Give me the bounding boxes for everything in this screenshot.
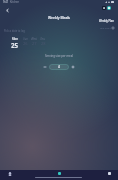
button[interactable]: Wed <box>31 37 37 46</box>
staticText: Weekly Plan <box>99 19 114 23</box>
button[interactable]: 4 <box>49 64 69 70</box>
button[interactable]: Bookmark <box>102 6 106 10</box>
button[interactable]: Profile <box>107 6 111 10</box>
staticText: Weekly Meals <box>48 15 70 19</box>
button[interactable]: Recents <box>106 170 113 177</box>
staticText: 4 <box>58 65 60 69</box>
button[interactable]: Back <box>3 6 12 15</box>
staticText: Kitchen <box>10 0 20 4</box>
button[interactable]: Increase <box>70 64 76 70</box>
button[interactable]: Decrease <box>42 64 48 70</box>
staticText: Serving size per meal <box>45 54 73 58</box>
staticText: 26 <box>23 41 28 46</box>
staticText: Mon <box>12 37 19 41</box>
staticText: Wed <box>31 37 37 41</box>
staticText: Pick a date to log <box>4 29 25 33</box>
button[interactable]: Home <box>6 170 13 177</box>
button[interactable]: Tue <box>23 37 28 46</box>
staticText: 9:41 <box>3 0 9 4</box>
staticText: 28 <box>41 41 46 46</box>
staticText: Tue <box>23 37 28 41</box>
staticText: 25 <box>11 41 19 49</box>
button[interactable]: Thu <box>40 37 46 46</box>
button[interactable]: Planner <box>56 170 63 177</box>
staticText: Thu <box>40 37 46 41</box>
staticText: 27 <box>32 41 37 46</box>
staticText: Mar 2024 <box>100 26 111 29</box>
button[interactable]: Mon <box>11 37 19 49</box>
